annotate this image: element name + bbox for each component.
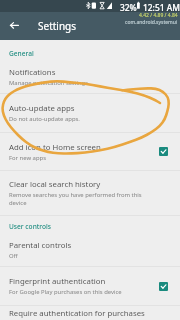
staticText: Manage notification settings <box>9 79 88 87</box>
staticText: Auto-update apps <box>9 103 75 114</box>
staticText: 32% <box>120 2 137 13</box>
button[interactable]: Fingerprint authentication <box>0 267 180 305</box>
staticText: Do not auto-update apps. <box>9 115 80 123</box>
staticText: User controls <box>9 222 51 231</box>
button[interactable]: Auto-update apps <box>0 94 180 132</box>
button[interactable]: Toggle Add icon to Home screen <box>159 147 168 156</box>
staticText: Require authentication for purchases <box>9 308 145 319</box>
staticText: Off <box>9 252 18 260</box>
button[interactable]: Toggle Fingerprint authentication <box>159 282 168 291</box>
staticText: Fingerprint authentication <box>9 276 106 287</box>
staticText: General <box>9 49 34 58</box>
button[interactable]: Parental controls <box>0 233 180 266</box>
staticText: Clear local search history <box>9 179 101 190</box>
staticText: 4.42 / 4.89 / 4.84 <box>139 12 178 19</box>
staticText: com.android.systemui <box>125 19 178 26</box>
button[interactable]: Back <box>0 12 28 40</box>
staticText: Add icon to Home screen <box>9 142 101 153</box>
staticText: 12:51 AM <box>143 2 180 13</box>
button[interactable]: Add icon to Home screen <box>0 133 180 170</box>
button[interactable]: Notifications <box>0 60 180 93</box>
staticText: Notifications <box>9 67 56 78</box>
staticText: For new apps <box>9 154 46 162</box>
button[interactable]: Clear local search history <box>0 171 180 215</box>
staticText: Remove searches you have performed from … <box>9 191 146 207</box>
staticText: For Google Play purchases on this device <box>9 288 122 296</box>
staticText: Settings <box>38 19 77 33</box>
button[interactable]: Require authentication for purchases <box>0 306 180 320</box>
staticText: Parental controls <box>9 240 72 251</box>
